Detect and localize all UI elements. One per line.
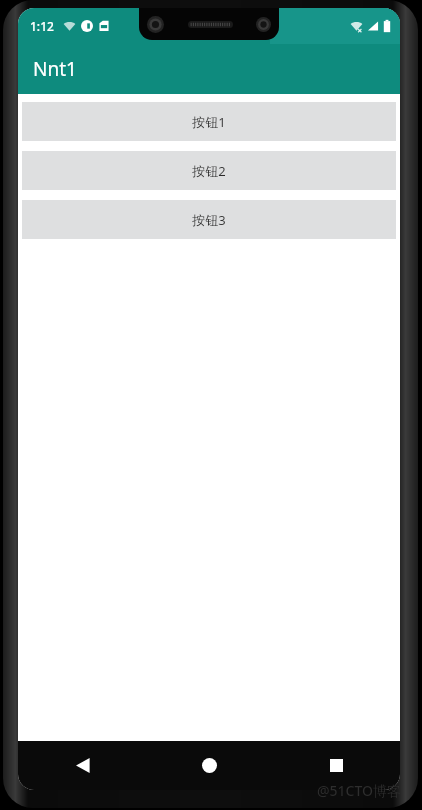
staticText: 按钮3 [192,211,226,229]
button[interactable]: 按钮2 [22,151,396,190]
staticText: Nnt1 [33,56,77,82]
button[interactable]: Back [18,741,146,790]
staticText: 1:12 [30,18,54,34]
staticText: @51CTO博客 [317,781,402,800]
button[interactable]: 按钮3 [22,200,396,239]
staticText: 按钮1 [192,113,226,131]
button[interactable]: Recents [273,741,400,790]
staticText: 按钮2 [192,162,226,180]
button[interactable]: 按钮1 [22,102,396,141]
button[interactable]: Home [146,741,273,790]
